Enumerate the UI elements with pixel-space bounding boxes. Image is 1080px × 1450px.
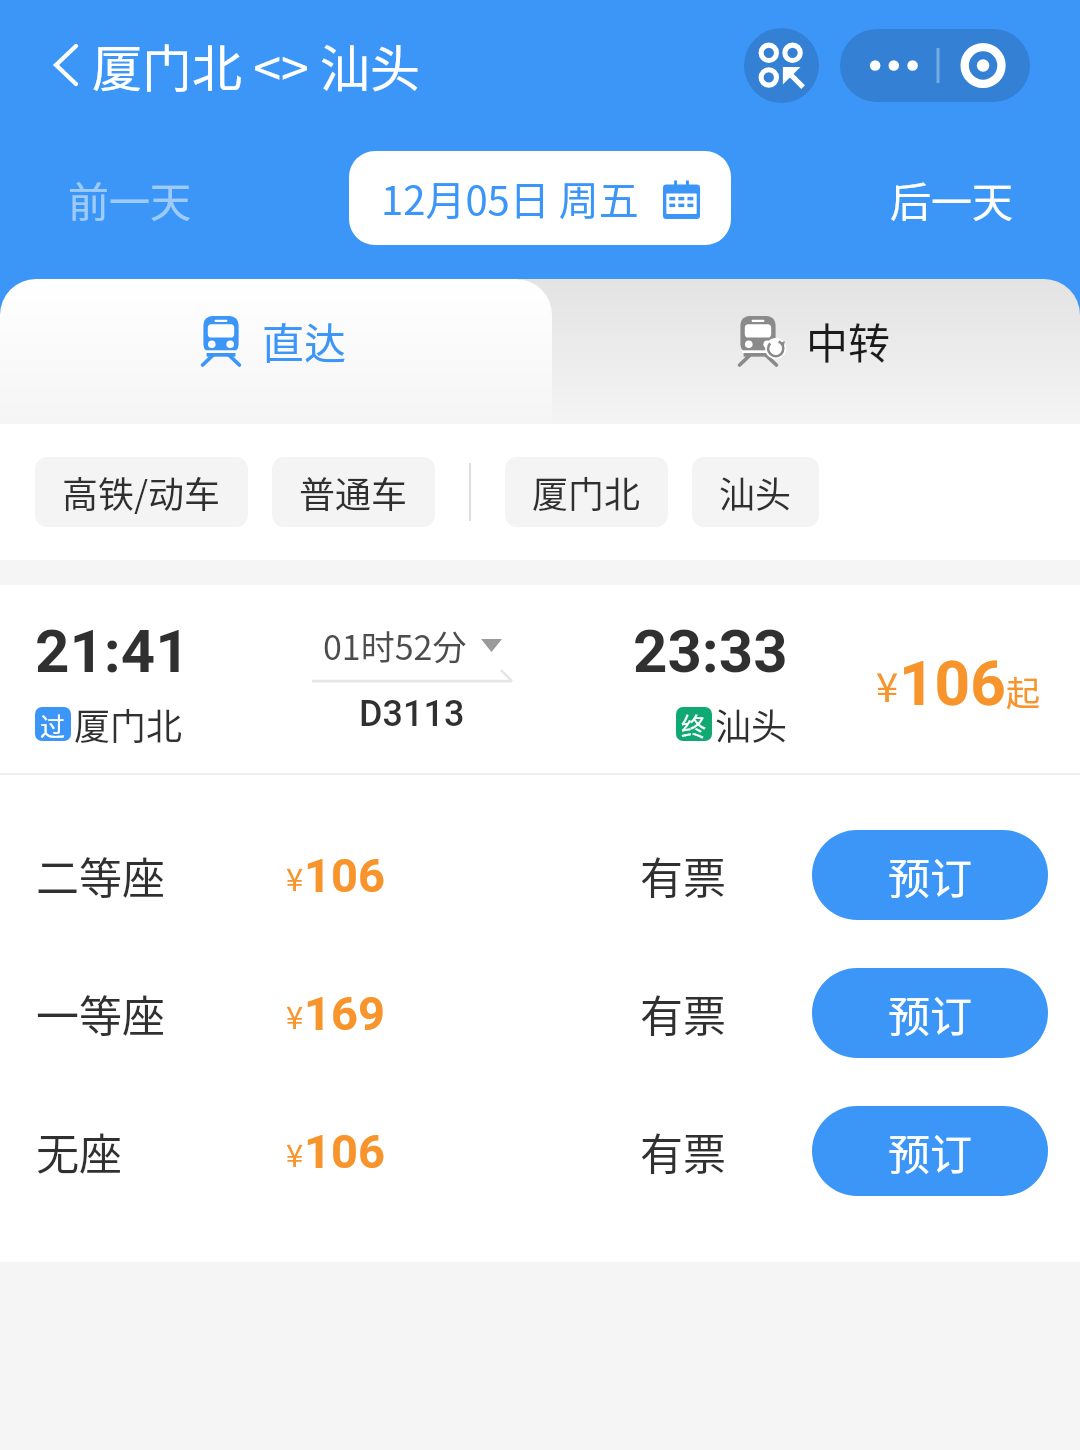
staticText: 一等座 (36, 982, 286, 1044)
staticText: 01时52分 (323, 621, 467, 670)
button[interactable] (492, 279, 1080, 424)
staticText: 高铁/动车 (62, 466, 221, 518)
button[interactable]: 高铁/动车 (35, 457, 248, 527)
staticText: 12月05日 周五 (381, 169, 639, 227)
button[interactable]: More options (840, 29, 1030, 102)
button[interactable]: 普通车 (272, 457, 435, 527)
staticText: 预订 (888, 845, 973, 906)
staticText: 有票 (640, 844, 812, 906)
staticText: ¥ (286, 1131, 304, 1176)
staticText: D3113 (359, 693, 465, 735)
staticText: ¥ (876, 656, 899, 714)
staticText: 中转 (806, 310, 891, 371)
button[interactable]: Back (42, 40, 92, 90)
button[interactable]: 后一天 (826, 160, 1076, 236)
staticText: 汕头 (719, 466, 792, 518)
staticText: 厦门北 <> 汕头 (92, 29, 420, 101)
staticText: 预订 (888, 1121, 973, 1182)
staticText: 普通车 (299, 466, 408, 518)
staticText: 106 (899, 647, 1006, 720)
staticText: ¥ (286, 993, 304, 1038)
button[interactable]: 预订 (812, 1106, 1048, 1196)
staticText: 起 (1006, 667, 1040, 716)
staticText: 二等座 (36, 844, 286, 906)
staticText: 106 (304, 848, 385, 903)
button[interactable] (0, 279, 552, 424)
staticText: 169 (304, 986, 385, 1041)
button[interactable]: Mini program menu (744, 28, 819, 103)
button[interactable]: 预订 (812, 968, 1048, 1058)
button[interactable]: 12月05日 周五 (349, 151, 731, 245)
button[interactable]: 预订 (812, 830, 1048, 920)
staticText: 终 (681, 707, 707, 741)
button[interactable]: 汕头 (692, 457, 819, 527)
staticText: 直达 (262, 310, 347, 371)
staticText: 有票 (640, 982, 812, 1044)
staticText: 21:41 (35, 616, 190, 686)
staticText: ¥ (286, 855, 304, 900)
staticText: 23:33 (633, 616, 788, 686)
button[interactable]: 前一天 (4, 160, 254, 236)
button[interactable]: 厦门北 (505, 457, 668, 527)
staticText: 汕头 (715, 698, 788, 750)
staticText: 无座 (36, 1120, 286, 1182)
staticText: 过 (40, 707, 66, 741)
staticText: 预订 (888, 983, 973, 1044)
staticText: 前一天 (68, 169, 191, 228)
staticText: 厦门北 (74, 698, 183, 750)
button[interactable]: 21:41 (0, 585, 1080, 773)
staticText: 有票 (640, 1120, 812, 1182)
staticText: 106 (304, 1124, 385, 1179)
staticText: 厦门北 (532, 466, 641, 518)
staticText: 后一天 (890, 169, 1013, 228)
